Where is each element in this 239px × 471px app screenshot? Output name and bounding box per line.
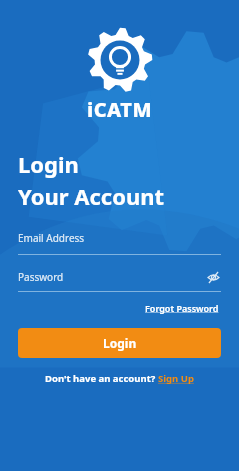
staticText: Don't have an account? [45,372,158,385]
staticText: Email Address [18,231,85,245]
staticText: iCATM [18,96,221,123]
button[interactable]: Email Address [18,231,221,255]
staticText: Password [18,270,205,284]
button[interactable]: Login [18,328,221,358]
staticText: Forgot Password [145,302,219,314]
button[interactable]: Password [18,269,221,292]
staticText: Login [18,149,79,179]
staticText: Login [103,335,137,351]
button[interactable]: Forgot Password [143,300,221,316]
button[interactable]: Sign Up [158,372,194,385]
staticText: Your Account [18,181,165,211]
staticText: Sign Up [158,372,194,385]
button[interactable]: Toggle password visibility [205,269,221,285]
